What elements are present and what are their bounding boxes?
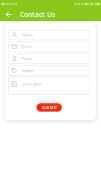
staticText: Name — [22, 32, 33, 37]
button[interactable]: Subject — [9, 65, 90, 76]
button[interactable]: Email — [9, 41, 90, 52]
button[interactable]: SUBMIT — [36, 103, 62, 112]
staticText: SUBMIT — [42, 105, 57, 110]
button[interactable]: Description — [9, 77, 90, 94]
button[interactable]: Phone — [9, 53, 90, 64]
staticText: Email — [22, 44, 32, 49]
staticText: Subject — [22, 68, 34, 73]
staticText: Description — [22, 81, 42, 87]
staticText: Phone — [22, 56, 32, 61]
button[interactable]: Name — [9, 29, 90, 40]
button[interactable]: Back — [3, 8, 15, 21]
staticText: Contact Us — [20, 10, 55, 19]
